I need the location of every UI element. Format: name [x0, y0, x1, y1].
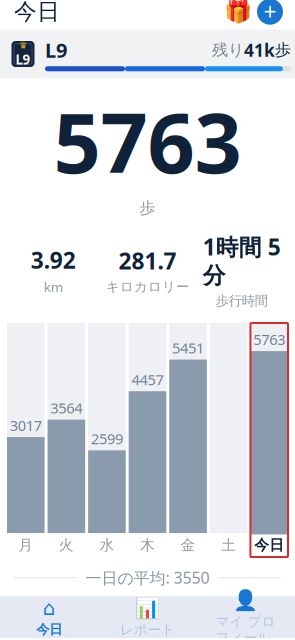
- staticText: 🎁: [224, 0, 252, 25]
- staticText: 📊: [135, 597, 160, 620]
- staticText: 3564: [50, 398, 82, 418]
- button[interactable]: ⌂: [0, 591, 98, 640]
- button[interactable]: 追加: [253, 0, 287, 29]
- staticText: 木: [140, 536, 155, 554]
- staticText: 歩: [139, 198, 155, 218]
- staticText: 土: [221, 536, 236, 554]
- staticText: 一日の平均: 3550: [85, 567, 209, 588]
- staticText: 今日: [14, 0, 60, 26]
- staticText: 今日: [36, 621, 62, 638]
- button[interactable]: プレゼント: [223, 0, 253, 27]
- staticText: 5451: [172, 338, 204, 358]
- staticText: 👤: [233, 588, 258, 611]
- staticText: L9: [15, 50, 30, 68]
- staticText: 1時間 5分: [203, 232, 281, 290]
- staticText: km: [44, 278, 63, 296]
- staticText: レポート: [120, 621, 175, 638]
- staticText: 歩: [275, 40, 291, 60]
- staticText: ♛: [19, 40, 27, 50]
- staticText: 3017: [10, 416, 42, 435]
- staticText: 3.92: [31, 245, 76, 275]
- staticText: 残り: [212, 40, 244, 60]
- button[interactable]: ♛: [0, 30, 295, 78]
- staticText: 2599: [91, 429, 123, 448]
- button[interactable]: 📊: [98, 591, 197, 640]
- staticText: L9: [45, 37, 67, 63]
- staticText: 281.7: [118, 246, 176, 276]
- staticText: 5763: [53, 86, 241, 196]
- staticText: 5763: [253, 330, 285, 349]
- staticText: 41k: [244, 38, 275, 61]
- staticText: 4457: [131, 370, 163, 389]
- button[interactable]: 👤: [197, 582, 295, 640]
- staticText: 今日: [254, 536, 284, 554]
- staticText: +: [263, 0, 276, 27]
- staticText: 月: [18, 536, 33, 554]
- staticText: 歩行時間: [216, 293, 268, 309]
- staticText: ⌂: [43, 597, 56, 619]
- staticText: 金: [181, 536, 196, 554]
- staticText: キロカロリー: [106, 279, 189, 295]
- staticText: マイ プロフィール: [216, 613, 276, 640]
- staticText: 火: [59, 536, 74, 554]
- staticText: 水: [99, 536, 114, 554]
